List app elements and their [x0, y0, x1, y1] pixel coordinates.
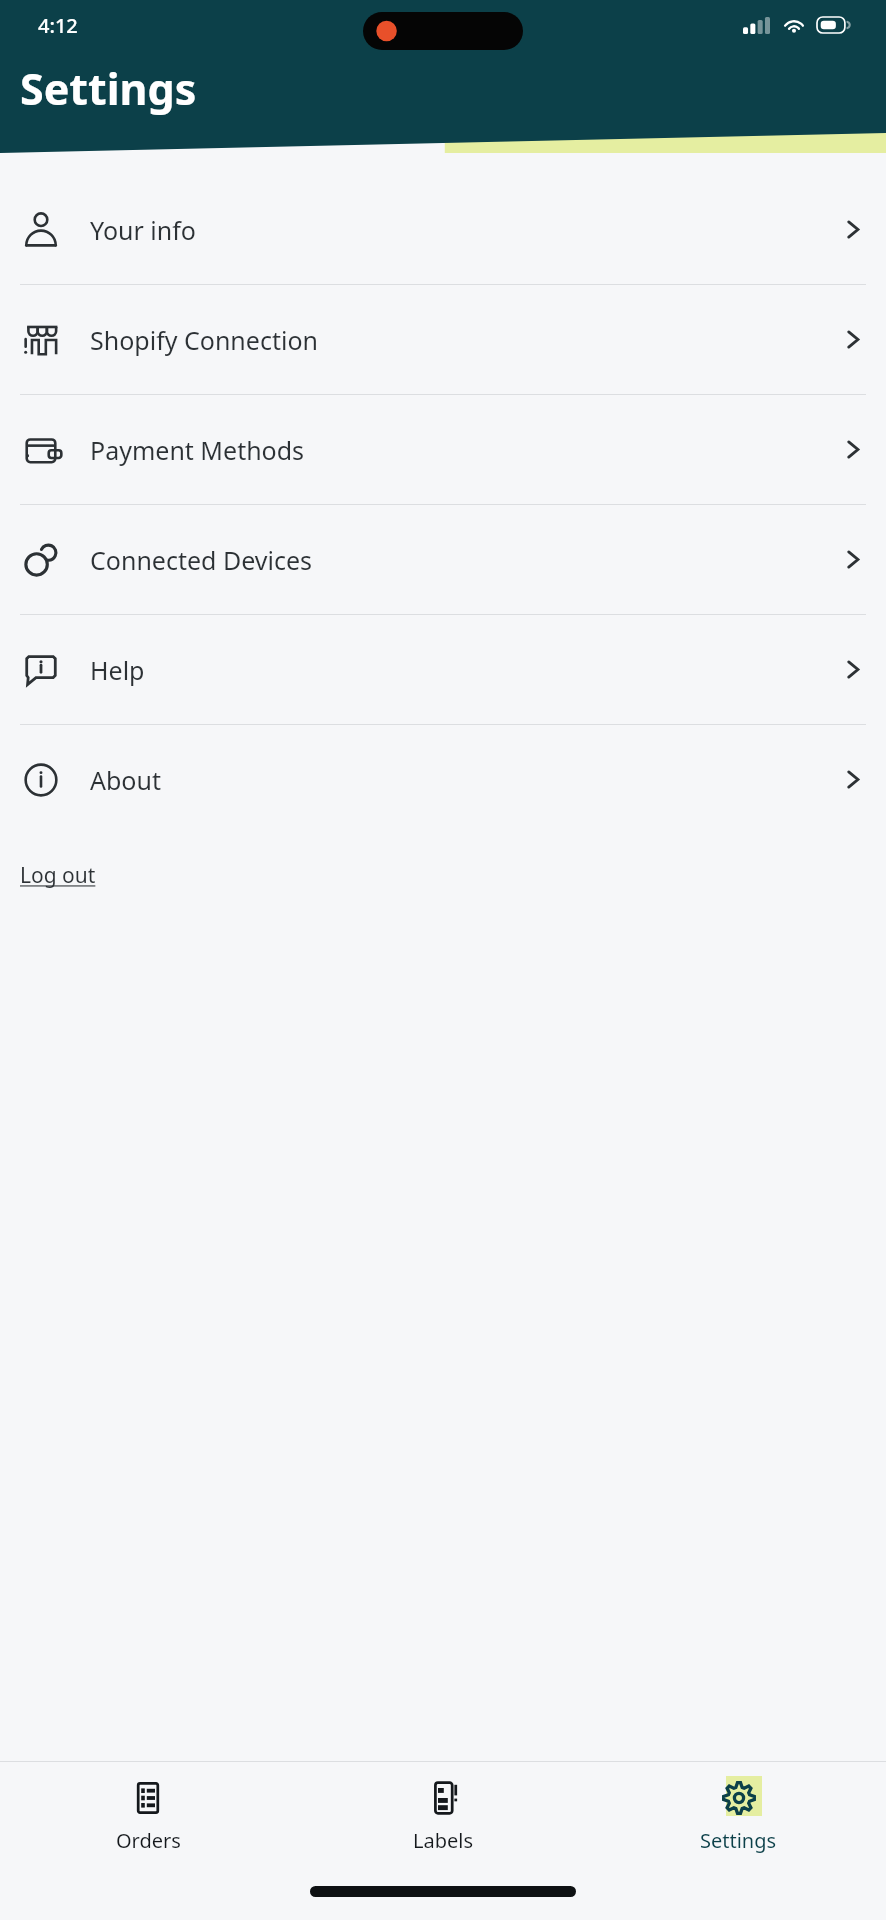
button[interactable]: Payment Methods — [0, 395, 886, 504]
button[interactable]: Your info — [0, 175, 886, 284]
button[interactable]: Shopify Connection — [0, 285, 886, 394]
staticText: Settings — [20, 59, 197, 118]
button[interactable]: About — [0, 725, 886, 834]
button[interactable]: Connected Devices — [0, 505, 886, 614]
staticText: Your info — [90, 213, 196, 247]
staticText: Settings — [700, 1827, 777, 1854]
staticText: Payment Methods — [90, 433, 305, 467]
staticText: Help — [90, 653, 145, 687]
staticText: About — [90, 763, 161, 797]
button[interactable]: Orders — [0, 1762, 296, 1866]
staticText: 4:12 — [38, 12, 78, 39]
staticText: Shopify Connection — [90, 323, 318, 357]
button[interactable]: Labels — [296, 1762, 591, 1866]
button[interactable]: Help — [0, 615, 886, 724]
staticText: Orders — [116, 1827, 181, 1854]
staticText: Labels — [413, 1827, 474, 1854]
staticText: Log out — [20, 861, 96, 890]
staticText: Connected Devices — [90, 543, 313, 577]
button[interactable]: Settings — [591, 1762, 886, 1866]
button[interactable]: Log out — [20, 858, 96, 893]
